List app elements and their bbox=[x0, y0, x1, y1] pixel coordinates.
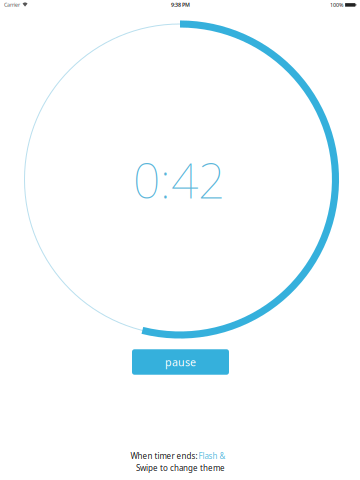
staticText: When timer ends: bbox=[130, 451, 197, 461]
staticText: Swipe to change theme bbox=[136, 463, 225, 473]
staticText: pause bbox=[165, 355, 196, 369]
staticText: 0:42 bbox=[133, 148, 225, 212]
button[interactable]: pause bbox=[132, 349, 229, 375]
button[interactable]: When timer ends: bbox=[130, 451, 225, 461]
staticText: Flash & bbox=[198, 451, 225, 461]
staticText: 100% bbox=[330, 1, 343, 8]
staticText: Carrier bbox=[4, 1, 20, 8]
staticText: 9:38 PM bbox=[171, 1, 190, 8]
